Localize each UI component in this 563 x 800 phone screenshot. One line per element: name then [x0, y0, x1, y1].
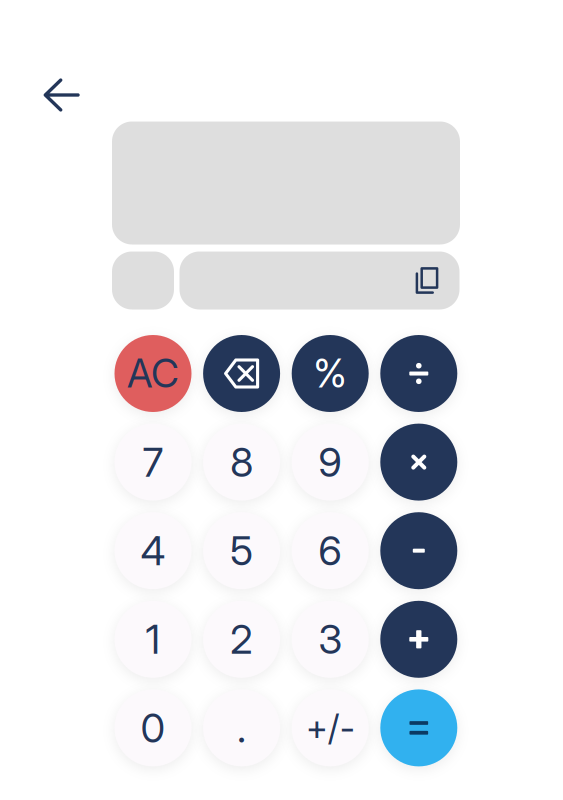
- button[interactable]: Delete: [203, 335, 280, 412]
- button[interactable]: 7: [114, 424, 191, 501]
- button[interactable]: Divide: [380, 335, 457, 412]
- button[interactable]: Back: [35, 71, 87, 119]
- staticText: 1: [145, 615, 160, 663]
- button[interactable]: 9: [292, 424, 369, 501]
- staticText: .: [237, 704, 246, 752]
- button[interactable]: 0: [114, 689, 191, 766]
- staticText: 8: [230, 438, 253, 486]
- staticText: 6: [318, 526, 342, 575]
- button[interactable]: %: [292, 335, 369, 412]
- staticText: 2: [230, 615, 253, 663]
- button[interactable]: 4: [114, 512, 191, 589]
- staticText: 3: [318, 615, 342, 663]
- button[interactable]: 5: [203, 512, 280, 589]
- staticText: 5: [230, 526, 253, 575]
- staticText: %: [313, 350, 347, 397]
- staticText: 4: [140, 526, 165, 575]
- staticText: +/-: [306, 707, 355, 749]
- button[interactable]: .: [203, 689, 280, 766]
- button[interactable]: Minus: [380, 512, 457, 589]
- button[interactable]: 2: [203, 601, 280, 678]
- button[interactable]: AC: [114, 335, 191, 412]
- button[interactable]: 6: [292, 512, 369, 589]
- button[interactable]: 1: [114, 601, 191, 678]
- button[interactable]: Multiply: [380, 424, 457, 501]
- staticText: AC: [127, 350, 179, 397]
- button[interactable]: 3: [292, 601, 369, 678]
- button[interactable]: Copy result: [415, 267, 459, 294]
- button[interactable]: +/-: [292, 689, 369, 766]
- button[interactable]: Equals: [380, 689, 457, 766]
- staticText: 7: [142, 438, 163, 486]
- button[interactable]: 8: [203, 424, 280, 501]
- staticText: 9: [318, 438, 342, 486]
- staticText: 0: [140, 704, 165, 752]
- button[interactable]: Plus: [380, 601, 457, 678]
